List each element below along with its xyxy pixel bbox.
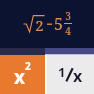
other: x squared <box>14 59 31 90</box>
staticText: 2 <box>25 59 31 73</box>
staticText: 1 <box>58 63 66 81</box>
button[interactable]: one over x, reciprocal <box>47 55 94 94</box>
staticText: x <box>14 64 25 90</box>
button[interactable]: x squared <box>0 55 45 94</box>
staticText: 2 <box>35 15 44 35</box>
staticText: 3 <box>65 9 71 23</box>
staticText: 4 <box>65 24 71 38</box>
other: one over x, reciprocal <box>58 62 83 87</box>
staticText: 5 <box>54 13 63 35</box>
staticText: x <box>73 65 83 87</box>
